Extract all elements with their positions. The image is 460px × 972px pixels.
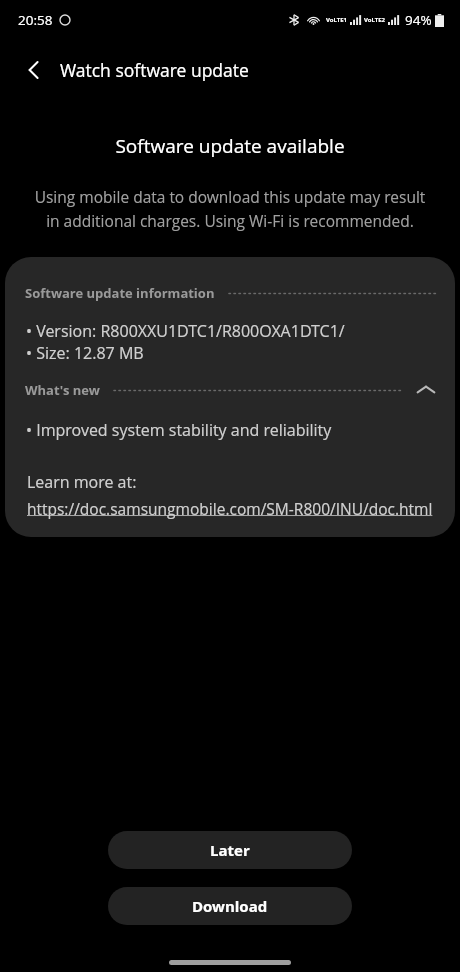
- staticText: VoLTE2: [364, 16, 386, 24]
- button[interactable]: Download: [108, 887, 352, 925]
- button[interactable]: Back: [14, 50, 54, 90]
- staticText: • Improved system stability and reliabil…: [26, 419, 332, 441]
- staticText: Using mobile data to download this updat…: [26, 186, 434, 231]
- staticText: Learn more at:: [27, 471, 137, 493]
- staticText: • Version: R800XXU1DTC1/R800OXA1DTC1/: [26, 320, 345, 342]
- staticText: Download: [192, 896, 268, 916]
- button[interactable]: Later: [108, 831, 352, 869]
- staticText: Later: [210, 840, 250, 860]
- staticText: • Size: 12.87 MB: [26, 342, 144, 364]
- button[interactable]: https://doc.samsungmobile.com/SM-R800/IN…: [27, 498, 433, 519]
- staticText: Watch software update: [60, 58, 249, 82]
- staticText: VoLTE1: [326, 16, 348, 24]
- staticText: Software update information: [25, 284, 215, 302]
- staticText: 94%: [405, 11, 432, 29]
- staticText: What's new: [25, 381, 100, 399]
- staticText: Software update available: [0, 133, 460, 159]
- staticText: 20:58: [18, 11, 53, 29]
- button[interactable]: Collapse What's new: [414, 378, 438, 402]
